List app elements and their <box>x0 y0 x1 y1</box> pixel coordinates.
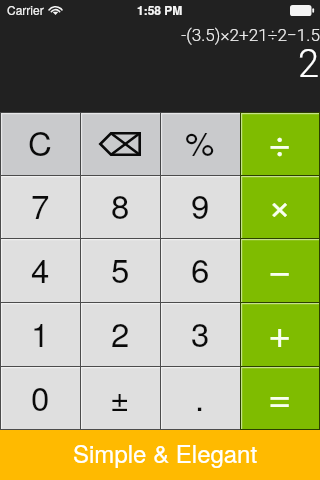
staticText: 1 <box>31 309 50 356</box>
button[interactable]: Plus minus <box>80 366 160 430</box>
button[interactable]: Minus <box>240 238 320 302</box>
button[interactable]: 4 <box>0 238 80 302</box>
staticText: 5 <box>111 245 130 292</box>
button[interactable]: Divide <box>240 112 320 175</box>
staticText: + <box>268 302 292 359</box>
button[interactable]: 7 <box>0 175 80 238</box>
button[interactable]: 5 <box>80 238 160 302</box>
button[interactable]: Percent <box>160 112 240 175</box>
staticText: ± <box>110 373 130 420</box>
button[interactable]: Decimal point <box>160 366 240 430</box>
button[interactable]: 1 <box>0 302 80 366</box>
staticText: 4 <box>31 245 50 292</box>
button[interactable]: 3 <box>160 302 240 366</box>
staticText: 0 <box>31 373 50 420</box>
staticText: Carrier <box>7 1 44 18</box>
staticText: = <box>268 366 292 423</box>
staticText: . <box>195 373 205 420</box>
staticText: % <box>185 118 215 165</box>
staticText: 1:58 PM <box>137 1 183 18</box>
staticText: 3 <box>191 309 210 356</box>
button[interactable]: Plus <box>240 302 320 366</box>
staticText: 9 <box>191 181 210 228</box>
button[interactable]: Equals <box>240 366 320 430</box>
button[interactable]: 8 <box>80 175 160 238</box>
staticText: 7 <box>31 181 50 228</box>
button[interactable]: Multiply <box>240 175 320 238</box>
staticText: 2 <box>111 309 130 356</box>
button[interactable]: 2 <box>80 302 160 366</box>
staticText: Simple & Elegant <box>73 435 258 469</box>
button[interactable]: 0 <box>0 366 80 430</box>
staticText: 2 <box>297 42 319 87</box>
staticText: 6 <box>191 245 210 292</box>
staticText: -(3.5)×2+21÷2−1.5 <box>181 25 320 45</box>
staticText: 8 <box>111 181 130 228</box>
staticText: ÷ <box>268 111 292 168</box>
staticText: − <box>268 238 292 295</box>
button[interactable]: Clear <box>0 112 80 175</box>
button[interactable]: 9 <box>160 175 240 238</box>
staticText: × <box>268 174 292 231</box>
button[interactable]: 6 <box>160 238 240 302</box>
button[interactable]: Simple & Elegant <box>0 430 320 480</box>
button[interactable]: Backspace <box>80 112 160 175</box>
staticText: C <box>28 118 52 165</box>
